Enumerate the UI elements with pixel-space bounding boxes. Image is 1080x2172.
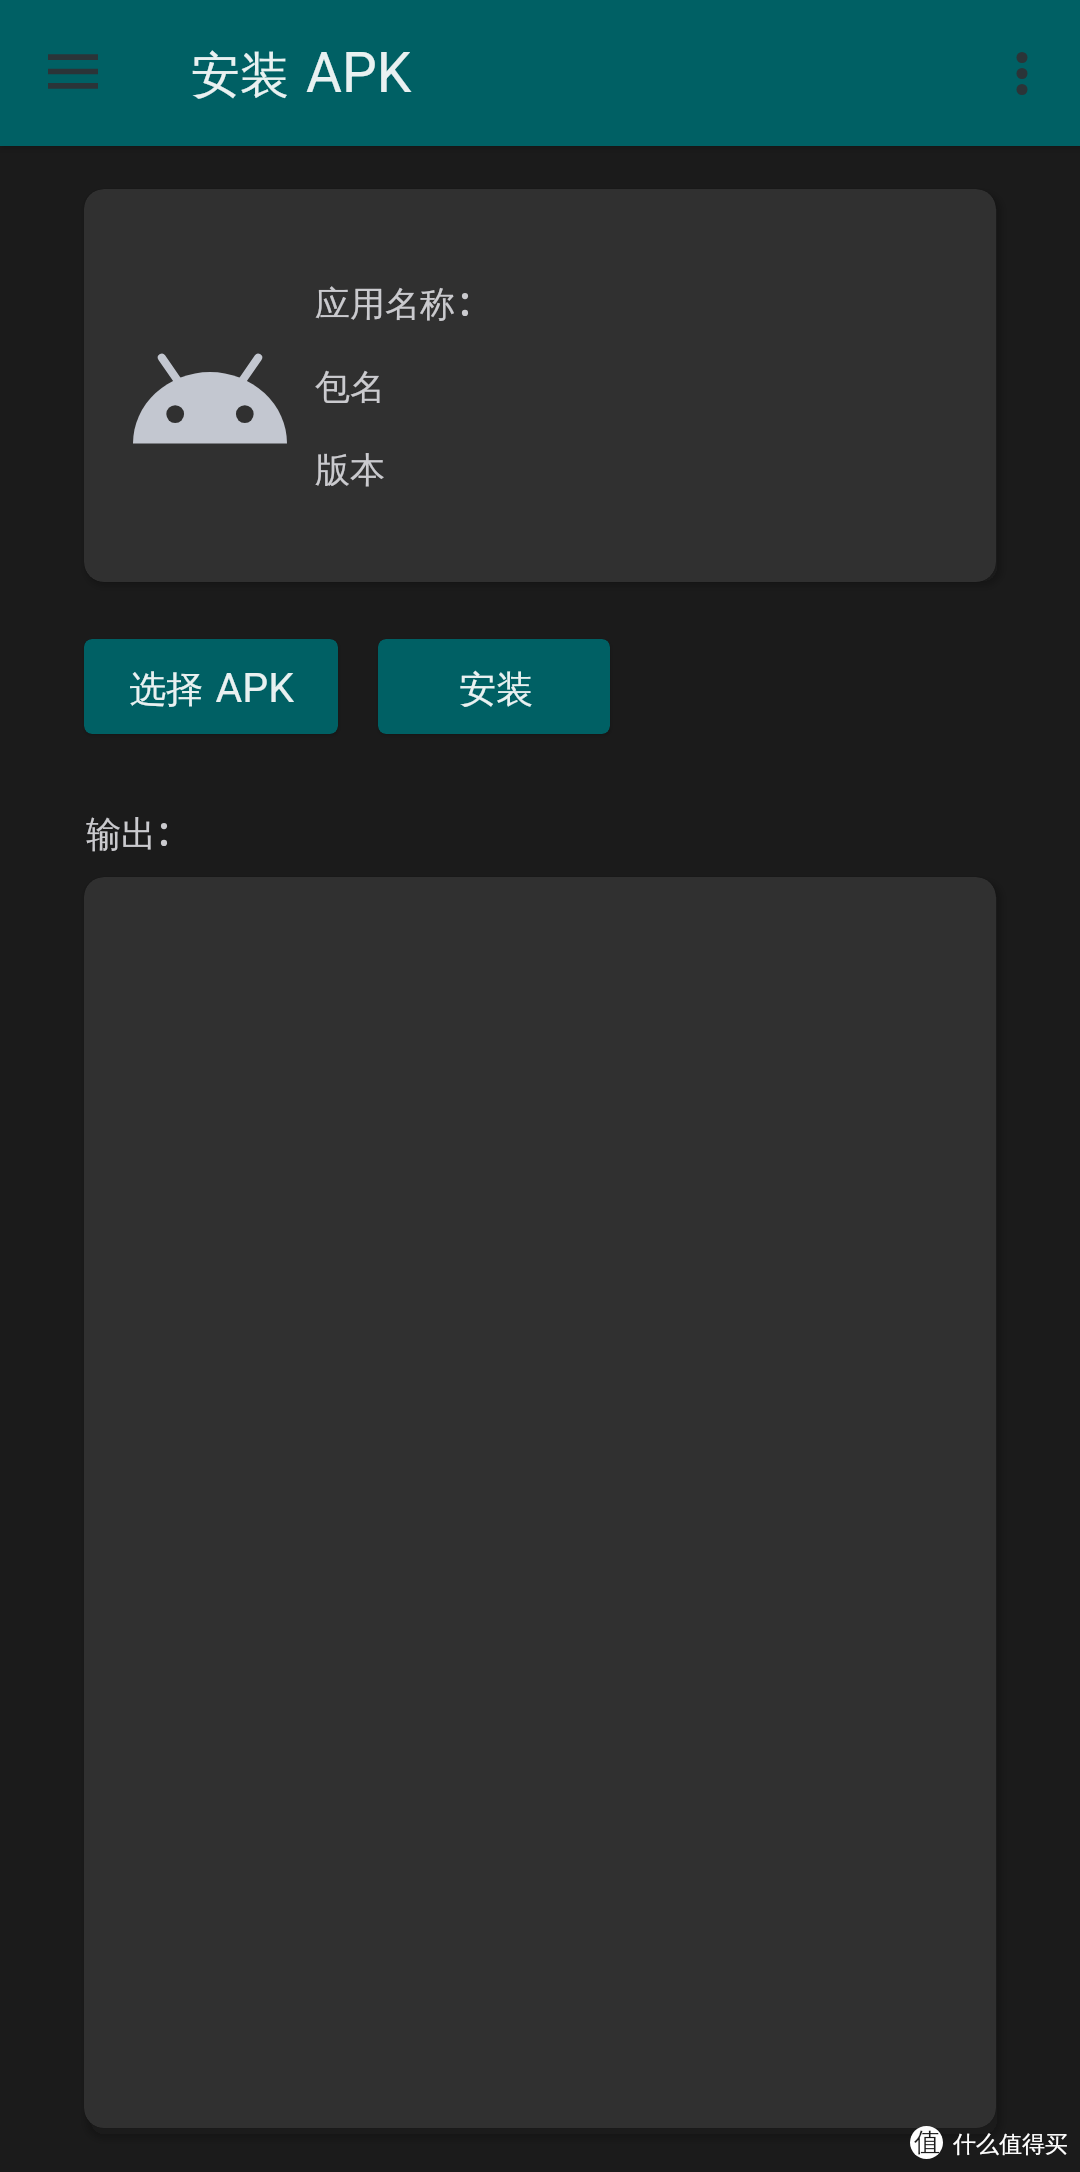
button[interactable]: More options [977,28,1067,118]
staticText: 选择 APK [129,656,294,715]
staticText: 应用名称 [315,282,455,326]
button[interactable]: 安装 [378,639,610,734]
staticText: 版本 [315,448,385,492]
staticText: 安装 APK [191,28,412,109]
staticText: 值 [914,2126,940,2159]
staticText: 输出 [86,812,156,856]
staticText: 什么值得买 [953,2130,1068,2159]
button[interactable]: Menu [23,21,123,121]
staticText: 包名 [315,365,385,409]
button[interactable]: 选择 APK [84,639,338,734]
staticText: 安装 [459,666,533,713]
